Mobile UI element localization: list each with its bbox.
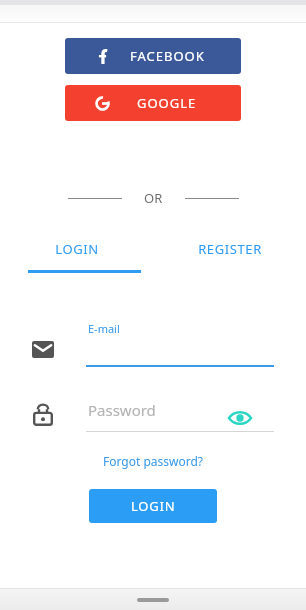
button[interactable]: Show password (228, 410, 252, 426)
button[interactable]: Forgot password? (97, 451, 210, 471)
button[interactable]: GOOGLE (65, 85, 241, 121)
button[interactable]: Password (0, 393, 306, 437)
button[interactable]: LOGIN (0, 240, 153, 273)
button[interactable]: E-mail (0, 313, 306, 371)
staticText: LOGIN (55, 240, 99, 258)
staticText: Password (88, 400, 156, 420)
button[interactable]: FACEBOOK (65, 38, 241, 74)
staticText: E-mail (88, 321, 120, 336)
button[interactable]: REGISTER (153, 240, 306, 270)
staticText: OR (144, 189, 163, 207)
staticText: GOOGLE (137, 94, 197, 112)
button[interactable]: LOGIN (89, 489, 217, 523)
staticText: REGISTER (198, 240, 262, 258)
staticText: LOGIN (131, 497, 176, 515)
staticText: FACEBOOK (130, 47, 205, 65)
other: E-mail (32, 341, 54, 358)
staticText: Forgot password? (103, 453, 204, 469)
other: Password (33, 403, 53, 426)
